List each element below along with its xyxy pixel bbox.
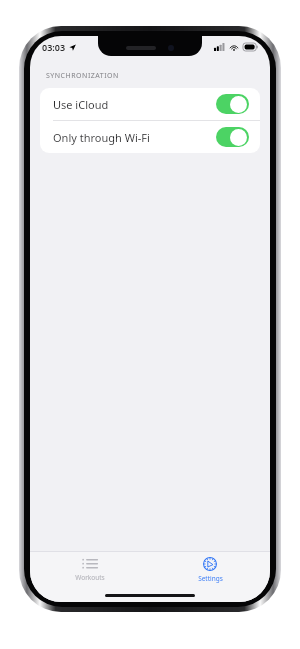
- button[interactable]: Toggle on: [216, 127, 249, 147]
- staticText: Use iCloud: [53, 97, 109, 112]
- button[interactable]: Workouts: [30, 552, 150, 602]
- staticText: SYNCHRONIZATION: [46, 71, 119, 81]
- button[interactable]: Settings: [150, 552, 270, 602]
- staticText: 03:03: [42, 41, 66, 53]
- button[interactable]: Use iCloud: [40, 88, 260, 120]
- button[interactable]: Only through Wi-Fi: [40, 121, 260, 153]
- button[interactable]: Toggle on: [216, 94, 249, 114]
- staticText: Settings: [198, 574, 223, 583]
- staticText: Only through Wi-Fi: [53, 130, 150, 145]
- staticText: Workouts: [75, 573, 105, 582]
